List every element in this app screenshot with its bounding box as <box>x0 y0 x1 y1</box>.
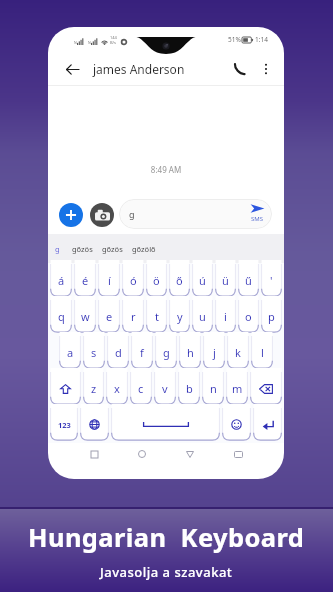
button[interactable]: n <box>202 372 224 405</box>
staticText: 8:49 AM <box>48 164 284 175</box>
staticText: i <box>224 309 227 324</box>
button[interactable]: 123 <box>50 408 78 441</box>
staticText: 123 <box>58 420 71 430</box>
button[interactable]: Change language <box>80 408 109 441</box>
staticText: 51% <box>228 35 241 44</box>
staticText: g <box>129 208 135 220</box>
staticText: m <box>232 381 243 396</box>
staticText: n <box>210 381 217 396</box>
button[interactable]: j <box>203 336 225 369</box>
staticText: ó <box>130 273 137 288</box>
staticText: k <box>235 345 241 360</box>
button[interactable]: ' <box>261 264 282 297</box>
button[interactable]: t <box>146 300 167 333</box>
staticText: t <box>155 309 159 324</box>
staticText: g <box>163 345 170 360</box>
button[interactable]: g <box>155 336 177 369</box>
staticText: v <box>162 381 168 396</box>
staticText: u <box>199 309 206 324</box>
button[interactable]: u <box>192 300 213 333</box>
staticText: 144 <box>110 35 117 40</box>
staticText: r <box>131 309 136 324</box>
button[interactable]: k <box>227 336 249 369</box>
staticText: p <box>268 309 275 324</box>
staticText: h <box>187 345 194 360</box>
staticText: Javasolja a szavakat <box>100 563 233 581</box>
staticText: ű <box>245 273 252 288</box>
button[interactable]: m <box>226 372 248 405</box>
staticText: f <box>140 345 144 360</box>
button[interactable]: g <box>119 199 272 229</box>
button[interactable]: Recents <box>86 446 102 462</box>
staticText: N <box>74 40 77 45</box>
button[interactable]: í <box>98 264 120 297</box>
staticText: Hungarian Keyboard <box>28 520 305 555</box>
staticText: j <box>213 345 216 360</box>
button[interactable]: é <box>74 264 96 297</box>
staticText: SMS <box>251 215 264 223</box>
staticText: gőzölő <box>132 244 156 254</box>
staticText: ő <box>176 273 183 288</box>
button[interactable]: z <box>83 372 104 405</box>
button[interactable]: Backspace <box>250 372 282 405</box>
button[interactable]: Emoji <box>222 408 251 441</box>
button[interactable]: d <box>107 336 129 369</box>
staticText: a <box>67 345 74 360</box>
button[interactable]: Send SMS <box>244 203 270 227</box>
button[interactable]: More options <box>259 62 273 76</box>
button[interactable]: p <box>261 300 282 333</box>
staticText: ö <box>153 273 160 288</box>
staticText: d <box>115 345 122 360</box>
button[interactable]: ú <box>192 264 213 297</box>
staticText: s <box>91 345 97 360</box>
staticText: ü <box>222 273 229 288</box>
button[interactable]: ü <box>215 264 236 297</box>
staticText: e <box>106 309 113 324</box>
button[interactable]: f <box>131 336 153 369</box>
button[interactable]: l <box>251 336 273 369</box>
button[interactable]: Call <box>231 60 249 78</box>
button[interactable]: ő <box>169 264 190 297</box>
staticText: í <box>108 273 111 288</box>
button[interactable]: Back <box>64 61 80 77</box>
button[interactable]: Home <box>134 446 150 462</box>
button[interactable]: i <box>215 300 236 333</box>
staticText: o <box>245 309 252 324</box>
button[interactable]: s <box>83 336 105 369</box>
button[interactable]: ű <box>238 264 259 297</box>
staticText: B/s <box>110 40 117 45</box>
button[interactable]: q <box>50 300 72 333</box>
button[interactable]: Shift <box>50 372 81 405</box>
button[interactable]: Space <box>111 408 220 441</box>
staticText: g <box>55 244 60 254</box>
staticText: gőzös <box>102 244 123 254</box>
button[interactable]: r <box>122 300 144 333</box>
button[interactable]: a <box>59 336 81 369</box>
button[interactable]: Attach <box>59 203 83 227</box>
button[interactable]: v <box>154 372 176 405</box>
button[interactable]: y <box>169 300 190 333</box>
button[interactable]: á <box>50 264 72 297</box>
button[interactable]: Camera <box>90 203 114 227</box>
button[interactable]: x <box>106 372 128 405</box>
button[interactable]: ö <box>146 264 167 297</box>
button[interactable]: w <box>74 300 96 333</box>
button[interactable]: Back <box>182 446 198 462</box>
button[interactable]: h <box>179 336 201 369</box>
button[interactable]: c <box>130 372 152 405</box>
button[interactable]: o <box>238 300 259 333</box>
staticText: q <box>58 309 65 324</box>
button[interactable]: Keyboard <box>230 446 246 462</box>
button[interactable]: Enter <box>253 408 282 441</box>
button[interactable]: b <box>178 372 200 405</box>
staticText: 1:14 <box>255 35 268 44</box>
button[interactable]: ó <box>122 264 144 297</box>
staticText: james Anderson <box>93 61 185 77</box>
staticText: c <box>138 381 144 396</box>
staticText: é <box>82 273 89 288</box>
staticText: w <box>81 309 90 324</box>
staticText: x <box>114 381 120 396</box>
staticText: á <box>58 273 65 288</box>
button[interactable]: e <box>98 300 120 333</box>
staticText: N <box>88 40 91 45</box>
